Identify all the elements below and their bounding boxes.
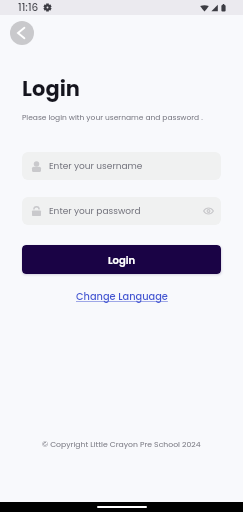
staticText: Login	[22, 74, 81, 103]
staticText: © Copyright Little Crayon Pre School 202…	[42, 439, 201, 450]
staticText: Enter your password	[49, 205, 141, 218]
button[interactable]: Show password	[201, 204, 215, 218]
staticText: Please login with your username and pass…	[22, 112, 203, 122]
staticText: Login	[108, 253, 136, 267]
button[interactable]: Change Language	[70, 288, 174, 306]
staticText: Enter your username	[49, 160, 143, 173]
button[interactable]: Enter your password	[22, 197, 221, 225]
button[interactable]: Enter your username	[22, 152, 221, 180]
staticText: 11:16	[18, 0, 39, 15]
staticText: Change Language	[76, 290, 168, 304]
button[interactable]: Back	[10, 21, 34, 45]
button[interactable]: Login	[22, 245, 221, 274]
